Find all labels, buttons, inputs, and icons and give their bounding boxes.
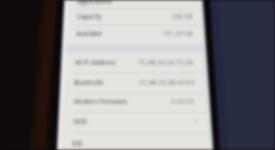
button[interactable]: [0, 0, 275, 150]
